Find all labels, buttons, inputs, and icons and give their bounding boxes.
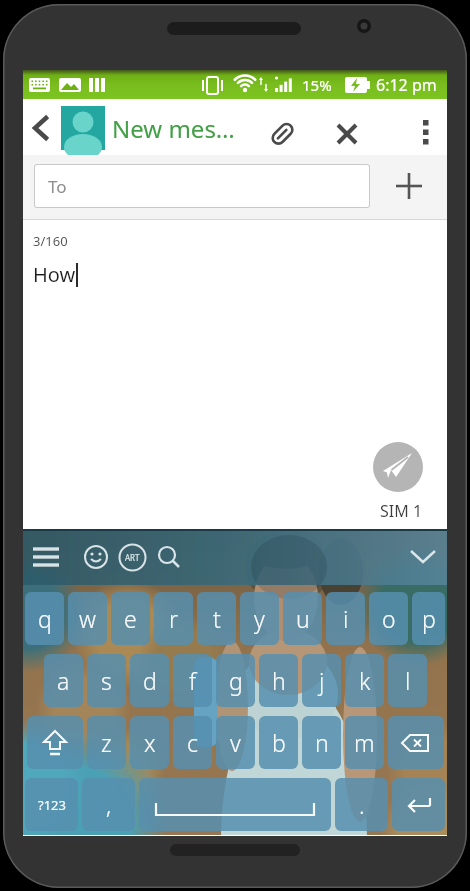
staticText: m bbox=[354, 727, 375, 758]
staticText: x bbox=[144, 727, 156, 758]
staticText: i bbox=[343, 603, 349, 634]
staticText: t bbox=[213, 603, 221, 634]
staticText: j bbox=[319, 665, 325, 696]
button[interactable] bbox=[139, 778, 331, 831]
button[interactable]: f bbox=[173, 654, 212, 707]
staticText: 3/160 bbox=[33, 232, 68, 250]
staticText: v bbox=[230, 727, 241, 758]
staticText: b bbox=[272, 727, 286, 758]
button[interactable]: u bbox=[283, 592, 322, 645]
button[interactable]: q bbox=[25, 592, 64, 645]
button[interactable] bbox=[387, 164, 431, 208]
staticText: u bbox=[296, 603, 310, 634]
staticText: p bbox=[422, 603, 436, 634]
button[interactable]: ART bbox=[115, 540, 149, 574]
button[interactable] bbox=[388, 716, 444, 769]
button[interactable]: , bbox=[82, 778, 135, 831]
button[interactable]: w bbox=[68, 592, 107, 645]
button[interactable]: o bbox=[369, 592, 408, 645]
staticText: h bbox=[272, 665, 286, 696]
button[interactable]: j bbox=[302, 654, 341, 707]
staticText: y bbox=[254, 603, 265, 634]
button[interactable] bbox=[23, 111, 57, 145]
button[interactable] bbox=[392, 778, 445, 831]
staticText: z bbox=[101, 727, 112, 758]
staticText: SIM 1 bbox=[380, 500, 423, 522]
staticText: , bbox=[106, 789, 112, 820]
button[interactable]: k bbox=[345, 654, 384, 707]
staticText: o bbox=[382, 603, 396, 634]
staticText: s bbox=[101, 665, 112, 696]
staticText: q bbox=[38, 603, 52, 634]
staticText: a bbox=[57, 665, 70, 696]
button[interactable] bbox=[61, 106, 105, 150]
staticText: New mes… bbox=[112, 112, 235, 145]
button[interactable]: l bbox=[388, 654, 427, 707]
button[interactable] bbox=[325, 112, 369, 156]
staticText: r bbox=[169, 603, 179, 634]
button[interactable]: e bbox=[111, 592, 150, 645]
button[interactable]: g bbox=[216, 654, 255, 707]
button[interactable]: p bbox=[412, 592, 445, 645]
button[interactable] bbox=[373, 442, 423, 492]
button[interactable]: v bbox=[216, 716, 255, 769]
staticText: n bbox=[315, 727, 329, 758]
button[interactable]: a bbox=[44, 654, 83, 707]
staticText: 6:12 pm bbox=[376, 74, 437, 96]
button[interactable]: h bbox=[259, 654, 298, 707]
staticText: ART bbox=[125, 552, 140, 563]
button[interactable]: b bbox=[259, 716, 298, 769]
button[interactable] bbox=[29, 540, 63, 574]
button[interactable] bbox=[405, 112, 447, 154]
button[interactable]: . bbox=[335, 778, 388, 831]
staticText: ?123 bbox=[38, 796, 66, 814]
button[interactable]: ?123 bbox=[25, 778, 78, 831]
staticText: w bbox=[79, 603, 96, 634]
staticText: d bbox=[143, 665, 157, 696]
button[interactable]: i bbox=[326, 592, 365, 645]
button[interactable]: x bbox=[130, 716, 169, 769]
staticText: . bbox=[359, 789, 365, 820]
button[interactable]: t bbox=[197, 592, 236, 645]
staticText: g bbox=[229, 665, 243, 696]
button[interactable] bbox=[406, 540, 440, 574]
staticText: f bbox=[189, 665, 197, 696]
staticText: l bbox=[405, 665, 411, 696]
button[interactable]: m bbox=[345, 716, 384, 769]
button[interactable]: r bbox=[154, 592, 193, 645]
button[interactable] bbox=[79, 540, 113, 574]
button[interactable]: c bbox=[173, 716, 212, 769]
button[interactable]: To bbox=[34, 164, 370, 208]
button[interactable]: n bbox=[302, 716, 341, 769]
staticText: e bbox=[124, 603, 137, 634]
button[interactable]: y bbox=[240, 592, 279, 645]
staticText: 15% bbox=[302, 75, 332, 95]
button[interactable]: z bbox=[87, 716, 126, 769]
staticText: k bbox=[359, 665, 371, 696]
staticText: c bbox=[187, 727, 198, 758]
staticText: How bbox=[33, 261, 76, 288]
button[interactable]: d bbox=[130, 654, 169, 707]
button[interactable] bbox=[260, 112, 304, 156]
button[interactable] bbox=[27, 716, 83, 769]
staticText: To bbox=[48, 175, 67, 198]
button[interactable]: s bbox=[87, 654, 126, 707]
button[interactable] bbox=[152, 540, 186, 574]
